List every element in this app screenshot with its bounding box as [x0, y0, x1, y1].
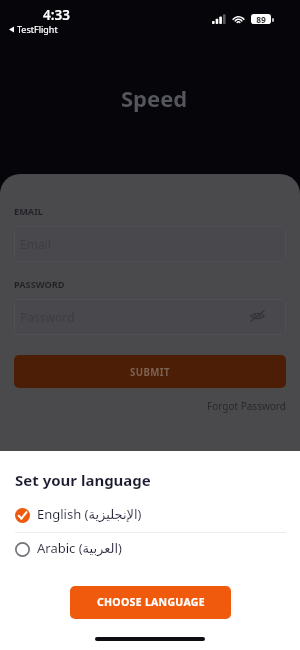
staticText: 4:33: [43, 6, 70, 24]
button[interactable]: CHOOSE LANGUAGE: [70, 586, 231, 619]
staticText: PASSWORD: [14, 278, 65, 291]
button[interactable]: Arabic (العربية): [0, 533, 300, 566]
staticText: Speed: [121, 83, 188, 113]
staticText: English (الإنجليزية): [37, 505, 142, 523]
staticText: EMAIL: [14, 205, 43, 218]
staticText: 89: [256, 14, 266, 24]
button[interactable]: Show password: [250, 310, 265, 322]
staticText: TestFlight: [17, 23, 58, 35]
button[interactable]: SUBMIT: [14, 355, 286, 388]
button[interactable]: English (الإنجليزية): [0, 499, 300, 532]
staticText: Arabic (العربية): [37, 539, 123, 557]
staticText: Email: [20, 236, 51, 252]
staticText: Password: [20, 309, 75, 325]
staticText: Set your language: [15, 470, 151, 490]
staticText: CHOOSE LANGUAGE: [97, 595, 205, 609]
staticText: SUBMIT: [130, 366, 170, 379]
button[interactable]: Forgot Password: [207, 399, 286, 413]
